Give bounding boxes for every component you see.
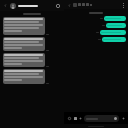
button[interactable]: Add xyxy=(78,116,83,121)
button[interactable] xyxy=(3,69,45,84)
button[interactable]: Camera xyxy=(84,115,119,122)
button[interactable]: Contact xyxy=(73,3,77,7)
button[interactable] xyxy=(3,53,45,67)
button[interactable]: Toolbar action xyxy=(86,3,89,6)
button[interactable]: Call xyxy=(54,2,62,10)
button[interactable] xyxy=(104,16,126,21)
button[interactable]: Attach xyxy=(72,115,78,121)
button[interactable] xyxy=(100,30,126,35)
button[interactable]: Toolbar action xyxy=(82,3,85,6)
button[interactable]: Back xyxy=(66,2,72,8)
button[interactable] xyxy=(102,37,126,42)
button[interactable]: Camera xyxy=(114,117,117,120)
button[interactable]: Back xyxy=(2,2,9,9)
button[interactable] xyxy=(3,37,45,51)
button[interactable]: Contact avatar xyxy=(10,3,16,9)
button[interactable]: Emoji xyxy=(66,115,72,121)
button[interactable]: Toolbar action xyxy=(78,3,81,6)
button[interactable] xyxy=(18,5,54,7)
button[interactable] xyxy=(106,23,126,28)
button[interactable]: More options xyxy=(120,2,126,8)
button[interactable]: Send xyxy=(120,115,126,121)
button[interactable] xyxy=(3,17,45,35)
